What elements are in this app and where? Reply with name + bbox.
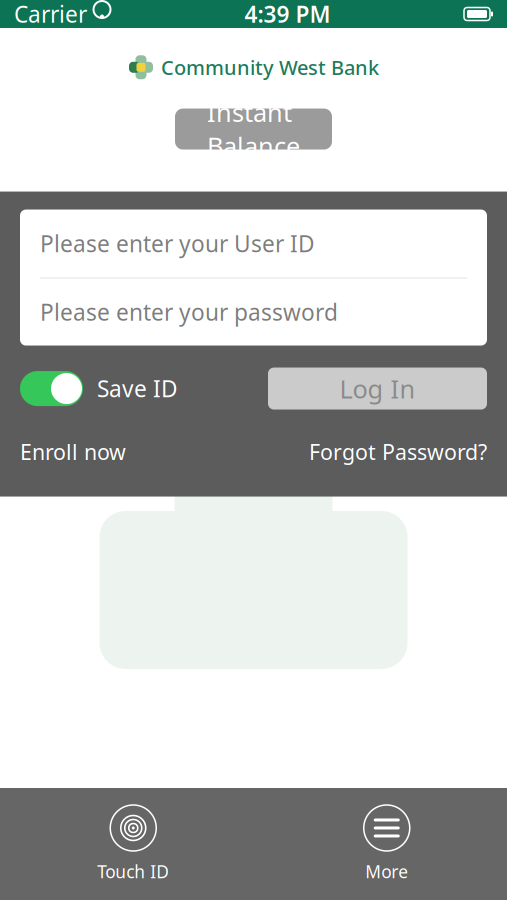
staticText: Instant Balance xyxy=(207,95,300,163)
staticText: Save ID xyxy=(97,373,178,404)
staticText: Forgot Password? xyxy=(309,438,487,466)
staticText: Community West Bank xyxy=(161,54,379,81)
staticText: Please enter your password xyxy=(40,297,338,327)
button[interactable]: Enroll now xyxy=(20,438,126,466)
staticText: Touch ID xyxy=(97,860,169,883)
button[interactable]: Forgot Password? xyxy=(309,438,487,466)
button[interactable]: More xyxy=(364,805,410,883)
staticText: Please enter your User ID xyxy=(40,228,315,259)
staticText: More xyxy=(365,860,408,883)
staticText: 4:39 PM xyxy=(244,0,330,29)
staticText: Enroll now xyxy=(20,438,126,466)
button[interactable]: Log In xyxy=(268,368,487,410)
staticText: Carrier xyxy=(14,0,87,29)
button[interactable]: Instant Balance xyxy=(175,109,332,150)
button[interactable]: Save ID xyxy=(20,371,178,406)
button[interactable]: Touch ID xyxy=(97,805,169,883)
staticText: Log In xyxy=(339,372,415,405)
